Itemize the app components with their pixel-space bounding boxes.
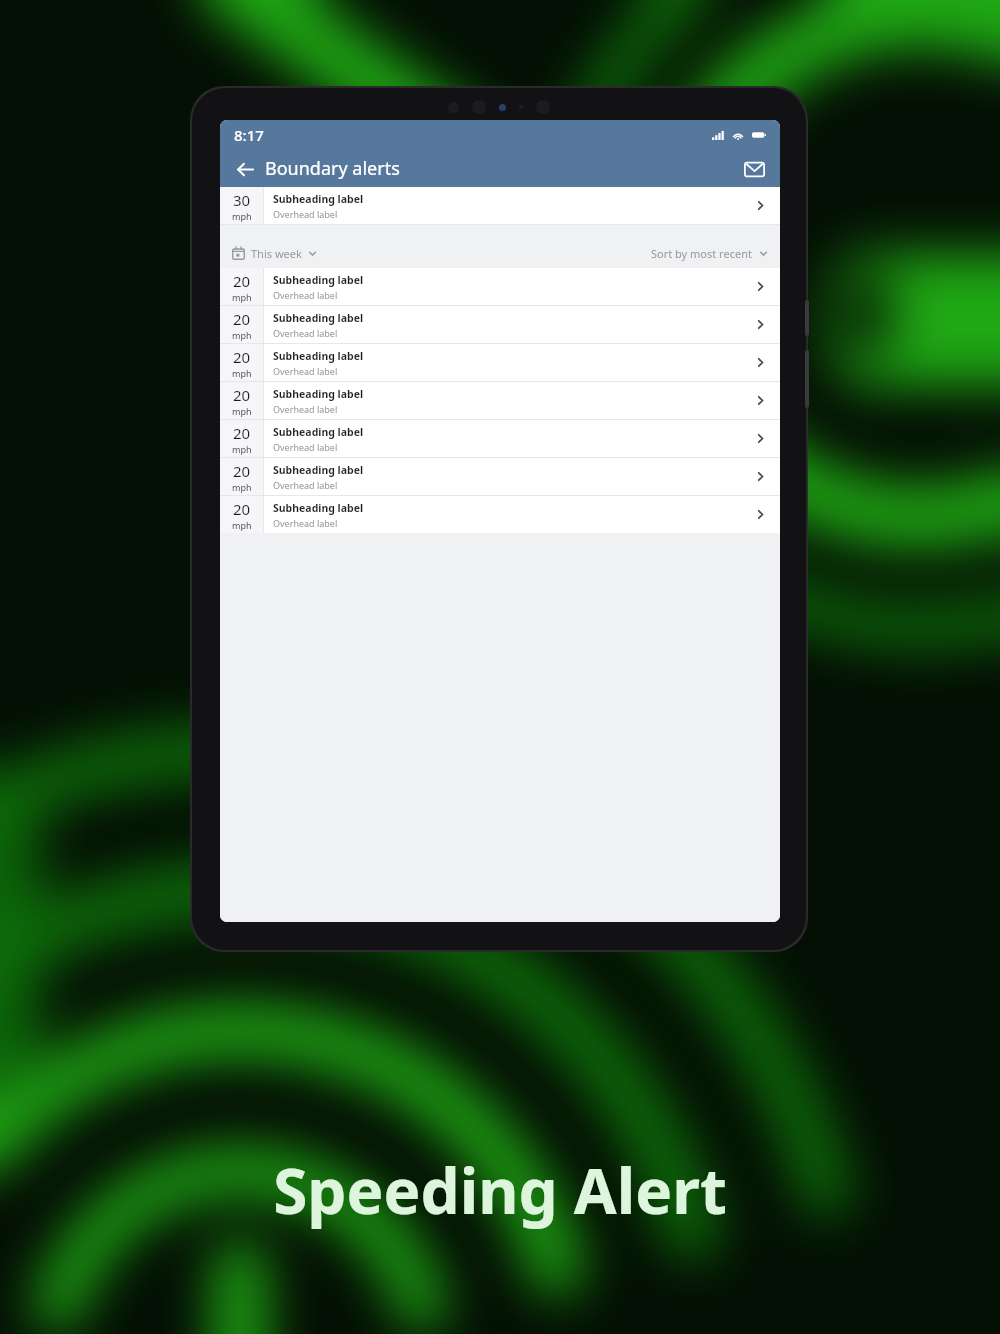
staticText: 20 [233, 423, 251, 443]
staticText: 20 [233, 347, 251, 367]
staticText: Subheading label [273, 311, 364, 325]
staticText: Subheading label [273, 501, 364, 515]
button[interactable]: 20 [220, 382, 780, 419]
staticText: Subheading label [273, 425, 364, 439]
staticText: 8:17 [234, 125, 264, 145]
staticText: mph [232, 367, 252, 379]
staticText: mph [232, 443, 252, 455]
staticText: Overhead label [273, 289, 338, 301]
staticText: Subheading label [273, 387, 364, 401]
staticText: mph [232, 291, 252, 303]
staticText: Boundary alerts [265, 156, 400, 181]
staticText: Overhead label [273, 479, 338, 491]
staticText: 20 [233, 461, 251, 481]
staticText: Subheading label [273, 192, 364, 206]
staticText: Subheading label [273, 273, 364, 287]
button[interactable]: Back [231, 155, 259, 183]
staticText: 20 [233, 499, 251, 519]
staticText: mph [232, 519, 252, 531]
staticText: This week [251, 246, 302, 261]
staticText: 20 [233, 309, 251, 329]
staticText: Overhead label [273, 365, 338, 377]
staticText: mph [232, 329, 252, 341]
staticText: Subheading label [273, 463, 364, 477]
button[interactable]: 20 [220, 458, 780, 495]
staticText: Speeding Alert [273, 1148, 727, 1232]
button[interactable]: 20 [220, 344, 780, 381]
button[interactable]: 20 [220, 306, 780, 343]
staticText: Overhead label [273, 441, 338, 453]
button[interactable]: 20 [220, 420, 780, 457]
staticText: 20 [233, 385, 251, 405]
button[interactable]: Sort by most recent [651, 246, 768, 261]
staticText: 30 [233, 190, 251, 210]
staticText: 20 [233, 271, 251, 291]
staticText: mph [232, 405, 252, 417]
staticText: Overhead label [273, 327, 338, 339]
button[interactable]: 30 [220, 187, 780, 224]
button[interactable]: 20 [220, 496, 780, 533]
staticText: mph [232, 210, 252, 222]
staticText: Overhead label [273, 403, 338, 415]
staticText: Overhead label [273, 517, 338, 529]
button[interactable]: 20 [220, 268, 780, 305]
button[interactable]: This week [232, 246, 317, 261]
staticText: Subheading label [273, 349, 364, 363]
staticText: Sort by most recent [651, 246, 752, 261]
staticText: mph [232, 481, 252, 493]
button[interactable]: Messages [739, 154, 769, 184]
staticText: Overhead label [273, 208, 338, 220]
